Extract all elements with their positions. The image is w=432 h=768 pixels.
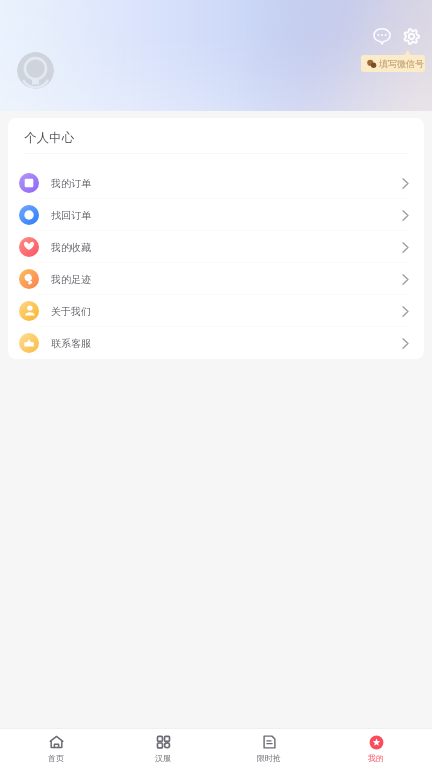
staticText: 填写微信号 bbox=[379, 58, 424, 69]
staticText: 联系客服 bbox=[51, 337, 91, 350]
button[interactable]: 我的收藏 bbox=[8, 231, 424, 263]
button[interactable]: Avatar bbox=[17, 52, 54, 89]
button[interactable]: 我的 bbox=[326, 729, 426, 768]
staticText: 找回订单 bbox=[51, 209, 91, 222]
staticText: 个人中心 bbox=[24, 130, 74, 146]
staticText: 限时抢 bbox=[257, 753, 281, 763]
staticText: 我的订单 bbox=[51, 177, 91, 190]
staticText: 汉服 bbox=[155, 753, 171, 763]
staticText: 我的 bbox=[368, 753, 384, 763]
staticText: 首页 bbox=[48, 753, 64, 763]
button[interactable]: 我的订单 bbox=[8, 167, 424, 199]
button[interactable]: Messages bbox=[371, 25, 393, 47]
button[interactable]: 找回订单 bbox=[8, 199, 424, 231]
staticText: 我的收藏 bbox=[51, 241, 91, 254]
button[interactable]: 我的足迹 bbox=[8, 263, 424, 295]
staticText: 关于我们 bbox=[51, 305, 91, 318]
button[interactable]: 填写微信号 bbox=[361, 52, 425, 72]
button[interactable]: Settings bbox=[400, 25, 422, 47]
button[interactable]: 关于我们 bbox=[8, 295, 424, 327]
button[interactable]: 限时抢 bbox=[219, 729, 319, 768]
button[interactable]: 首页 bbox=[6, 729, 106, 768]
staticText: 我的足迹 bbox=[51, 273, 91, 286]
button[interactable]: 联系客服 bbox=[8, 327, 424, 359]
button[interactable]: 汉服 bbox=[113, 729, 213, 768]
